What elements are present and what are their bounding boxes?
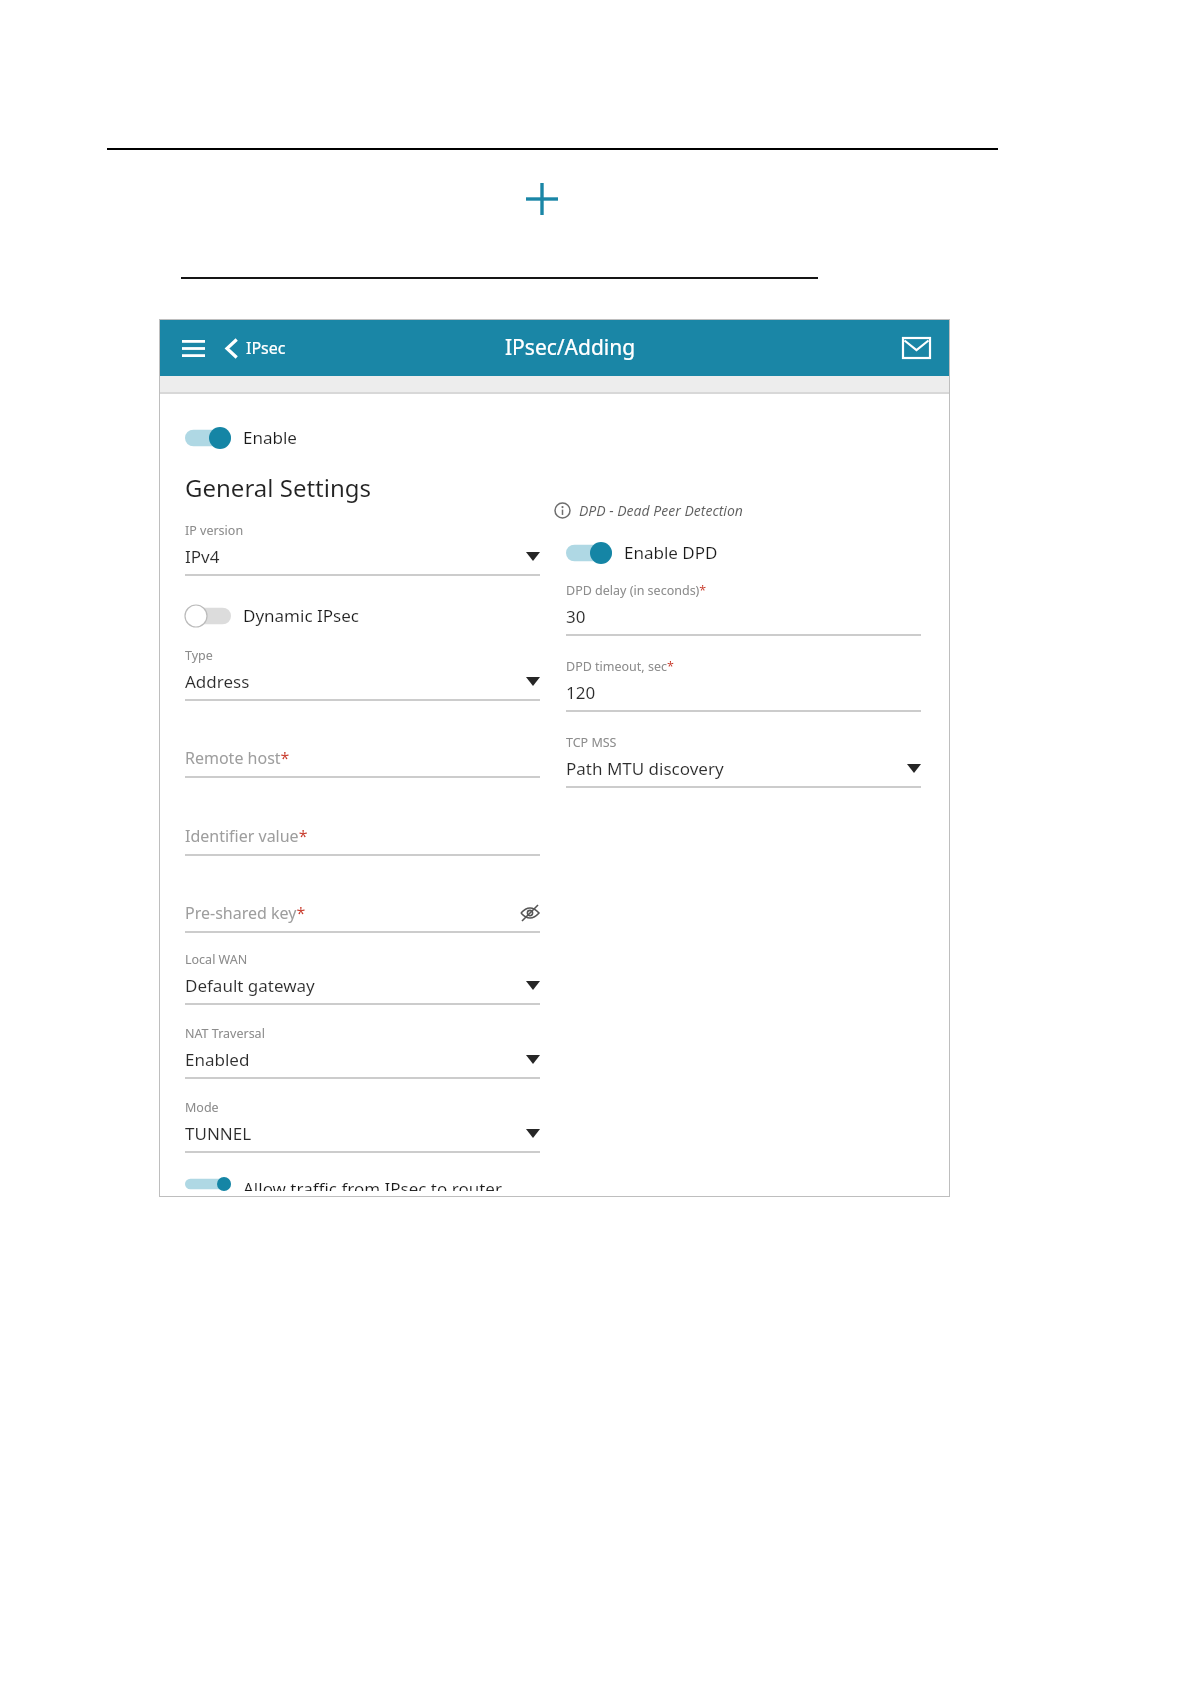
button[interactable]: Mode xyxy=(185,1099,540,1153)
button[interactable]: Menu xyxy=(173,328,213,368)
staticText: 30 xyxy=(566,605,586,628)
staticText: Enabled xyxy=(185,1048,526,1071)
staticText: General Settings xyxy=(185,471,372,504)
staticText: Mode xyxy=(185,1099,219,1116)
button[interactable]: Remote host* xyxy=(185,747,540,778)
staticText: Remote host* xyxy=(185,747,540,769)
staticText: IPv4 xyxy=(185,545,526,568)
button[interactable]: Identifier value* xyxy=(185,825,540,856)
staticText: Enable DPD xyxy=(624,541,718,564)
button[interactable]: NAT Traversal xyxy=(185,1025,540,1079)
staticText: Type xyxy=(185,647,213,664)
staticText: Path MTU discovery xyxy=(566,757,907,780)
staticText: TUNNEL xyxy=(185,1122,526,1145)
button[interactable]: Add xyxy=(520,177,564,221)
button[interactable]: IPsec xyxy=(219,331,292,365)
staticText: NAT Traversal xyxy=(185,1025,265,1042)
button[interactable]: Dynamic IPsec xyxy=(185,598,554,633)
staticText: Address xyxy=(185,670,526,693)
staticText: DPD timeout, sec* xyxy=(566,658,674,675)
staticText: Allow traffic from IPsec to router xyxy=(243,1177,502,1191)
button[interactable]: Allow traffic from IPsec to router xyxy=(185,1171,554,1197)
button[interactable]: Messages xyxy=(896,328,936,368)
staticText: 120 xyxy=(566,681,596,704)
button[interactable]: Pre-shared key* xyxy=(185,902,540,933)
staticText: IPsec xyxy=(246,337,286,359)
button[interactable]: Enable xyxy=(185,420,554,455)
button[interactable]: DPD delay (in seconds)* xyxy=(566,582,921,636)
staticText: DPD delay (in seconds)* xyxy=(566,582,707,599)
button[interactable]: Type xyxy=(185,647,540,701)
staticText: Identifier value* xyxy=(185,825,540,847)
button[interactable]: IP version xyxy=(185,522,540,576)
staticText: IP version xyxy=(185,522,244,539)
button[interactable]: Enable DPD xyxy=(566,535,950,570)
button[interactable]: TCP MSS xyxy=(566,734,921,788)
staticText: IPsec/Adding xyxy=(505,333,636,362)
staticText: Enable xyxy=(243,426,297,449)
staticText: DPD - Dead Peer Detection xyxy=(579,501,743,520)
staticText: Default gateway xyxy=(185,974,526,997)
staticText: Dynamic IPsec xyxy=(243,604,359,627)
staticText: Pre-shared key* xyxy=(185,902,520,924)
button[interactable]: DPD timeout, sec* xyxy=(566,658,921,712)
staticText: Local WAN xyxy=(185,951,248,968)
button[interactable]: Local WAN xyxy=(185,951,540,1005)
staticText: TCP MSS xyxy=(566,734,617,751)
